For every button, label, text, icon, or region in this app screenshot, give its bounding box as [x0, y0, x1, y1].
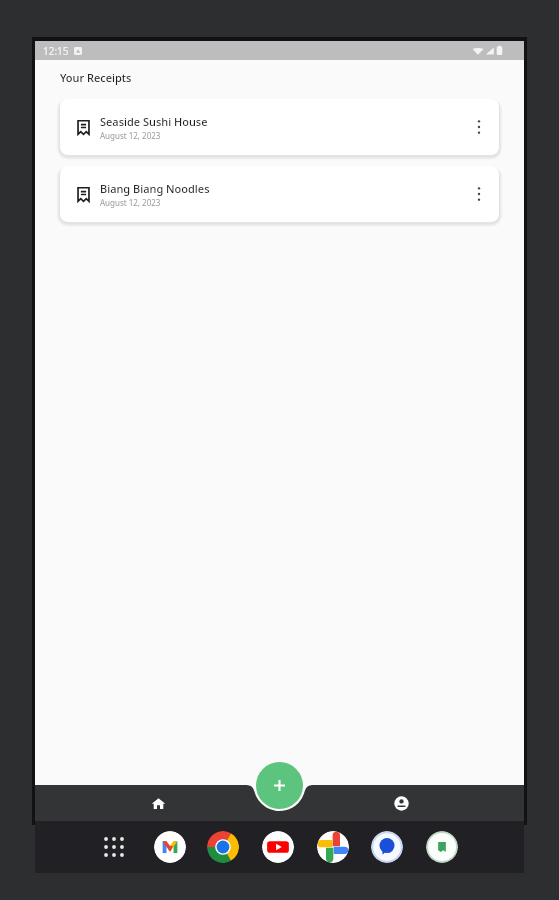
staticText: Your Receipts	[60, 70, 132, 85]
staticText: Seaside Sushi House	[100, 114, 208, 129]
button[interactable]: More options	[461, 109, 497, 145]
button[interactable]: YouTube	[262, 831, 294, 863]
staticText: August 12, 2023	[100, 197, 161, 208]
button[interactable]: Gmail	[154, 831, 186, 863]
staticText: 12:15	[43, 44, 69, 58]
button[interactable]: App	[426, 831, 458, 863]
button[interactable]: Google Photos	[317, 831, 349, 863]
button[interactable]: Home	[134, 785, 182, 821]
button[interactable]: More options	[461, 176, 497, 212]
staticText: August 12, 2023	[100, 130, 161, 141]
staticText: Biang Biang Noodles	[100, 181, 210, 196]
button[interactable]: Seaside Sushi House	[60, 99, 499, 155]
button[interactable]: Add receipt	[256, 762, 303, 809]
button[interactable]: Biang Biang Noodles	[60, 166, 499, 222]
button[interactable]: Messages	[371, 831, 403, 863]
button[interactable]: All apps	[100, 833, 128, 861]
button[interactable]: Account	[377, 785, 425, 821]
button[interactable]: Chrome	[207, 831, 239, 863]
